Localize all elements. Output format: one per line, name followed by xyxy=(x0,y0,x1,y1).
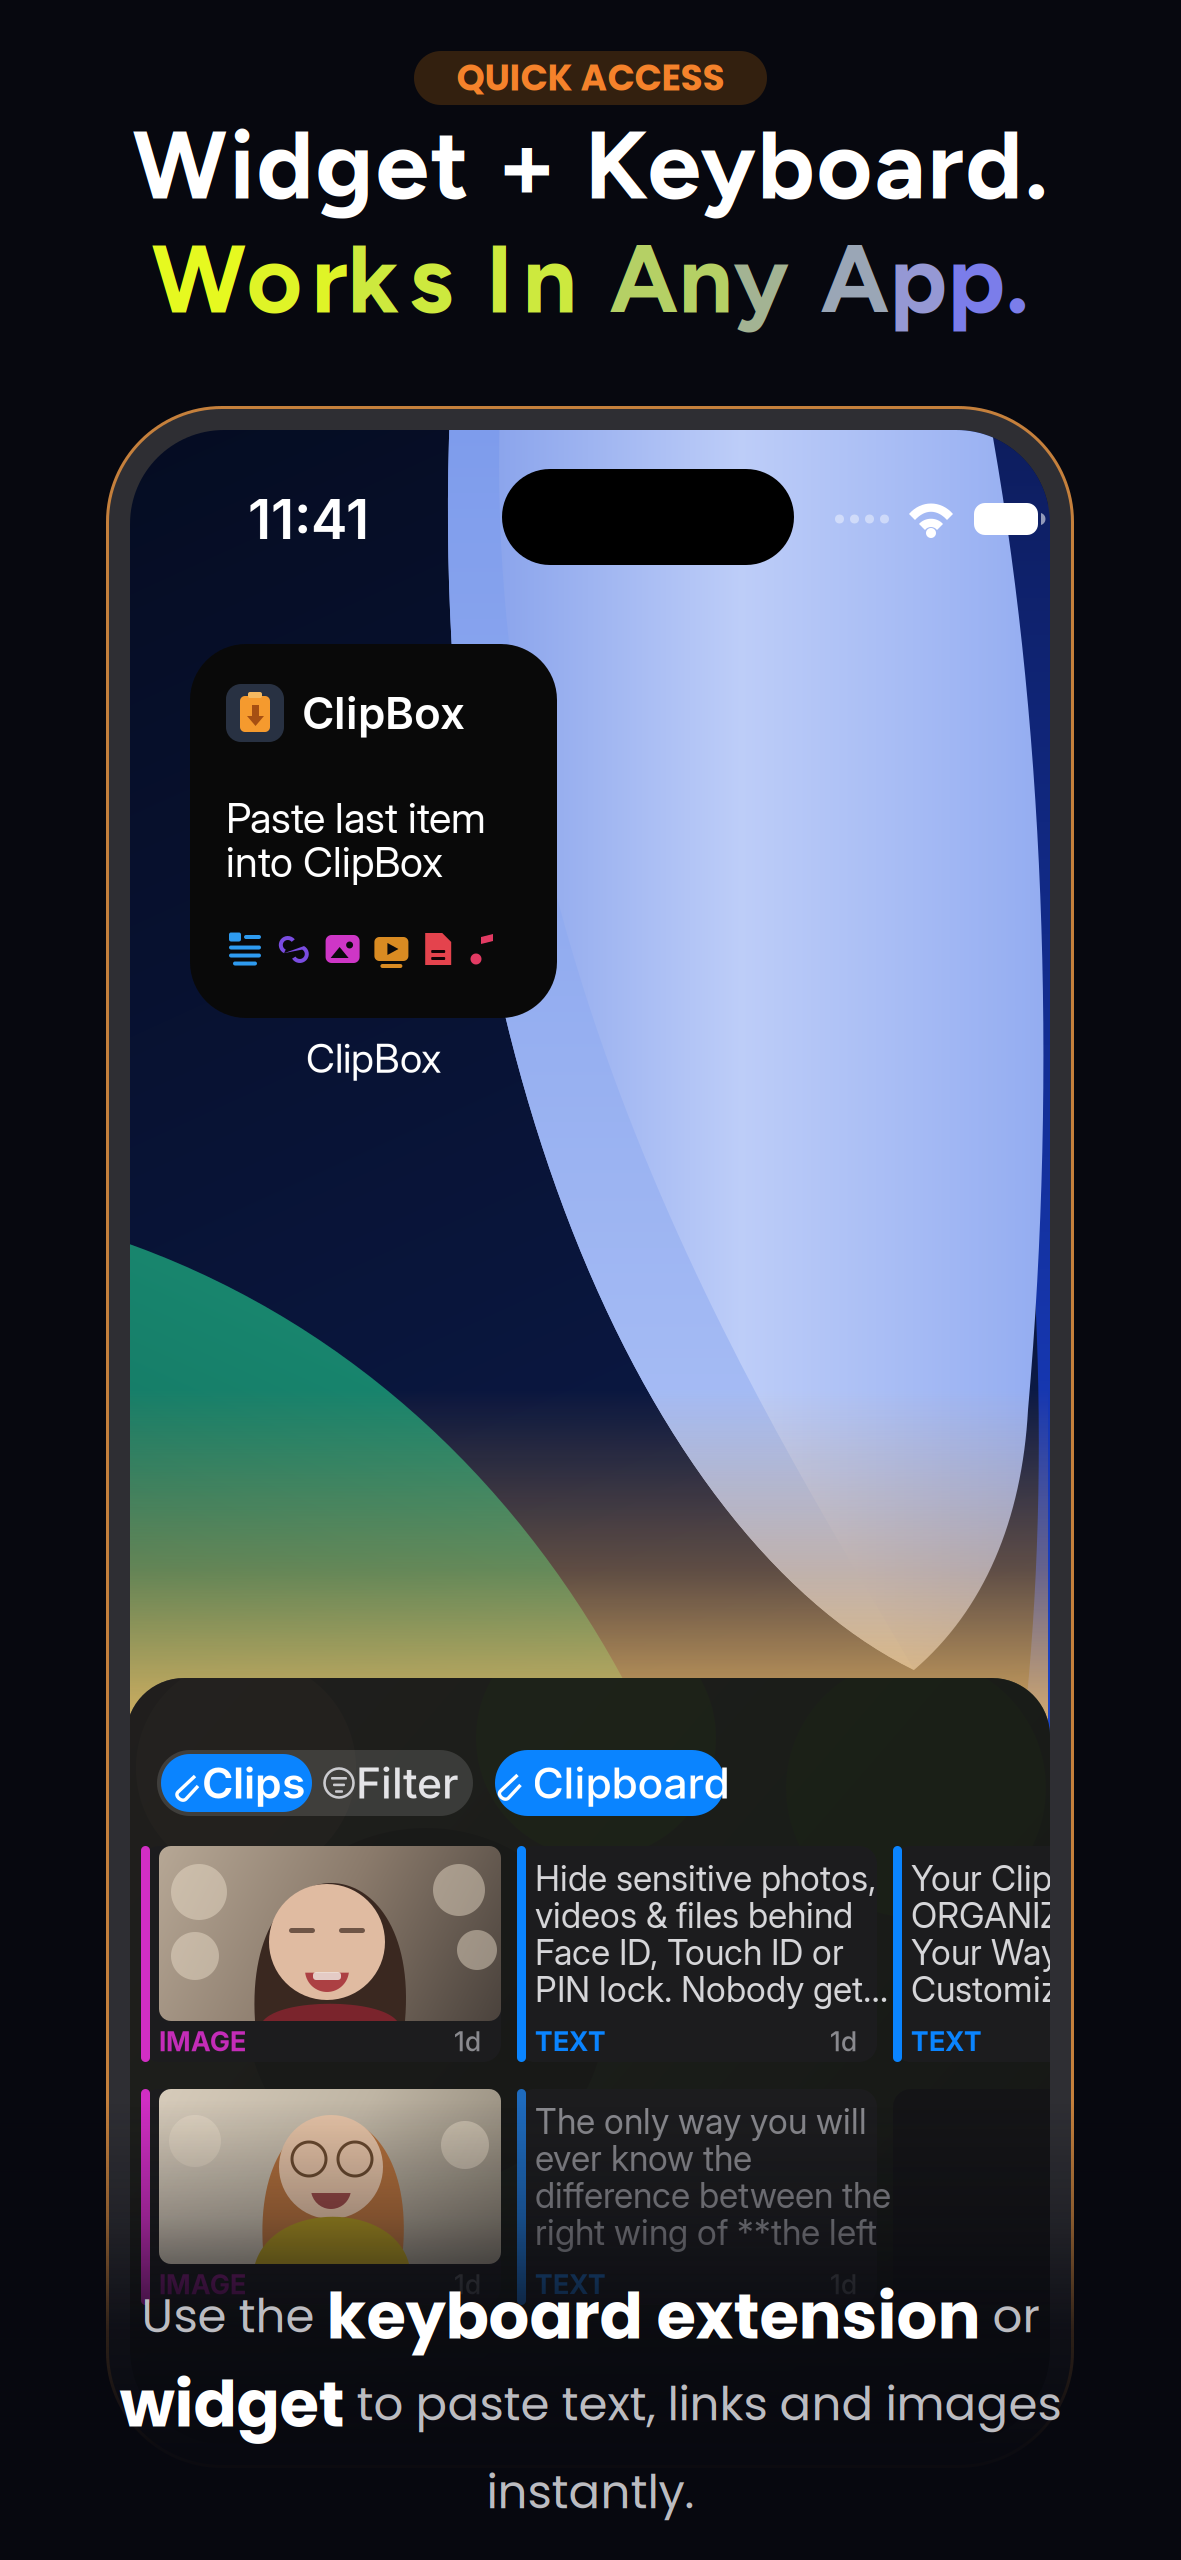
staticText: Paste last item xyxy=(226,793,486,843)
staticText: Use the xyxy=(141,2283,326,2349)
staticText: Clips xyxy=(202,1757,305,1809)
staticText: right wing of **the left xyxy=(535,2211,877,2253)
staticText: keyboard extension xyxy=(326,2271,980,2361)
staticText: . xyxy=(1005,221,1029,337)
staticText: videos & files behind xyxy=(535,1894,853,1936)
staticText: to paste text, links and images xyxy=(344,2371,1061,2437)
staticText: PIN lock. Nobody get… xyxy=(535,1968,888,2010)
staticText: Filter xyxy=(356,1757,459,1809)
staticText: 1d xyxy=(830,2025,857,2058)
staticText: 1d xyxy=(454,2025,481,2058)
button[interactable]: IMAGE xyxy=(141,1846,501,2062)
staticText: or xyxy=(246,221,347,337)
staticText: Customiz xyxy=(911,1968,1058,2010)
staticText: widget xyxy=(119,2359,344,2449)
button[interactable] xyxy=(893,2089,1181,2305)
staticText: instantly. xyxy=(486,2459,694,2525)
staticText: ClipBox xyxy=(306,1034,441,1082)
staticText: TEXT xyxy=(535,2268,606,2301)
staticText: 1d xyxy=(454,2268,481,2301)
button[interactable]: The only way you will xyxy=(517,2089,877,2305)
staticText: p xyxy=(947,221,1005,337)
button[interactable]: Clipboard xyxy=(495,1750,725,1816)
staticText: into ClipBox xyxy=(226,837,443,887)
staticText: 1d xyxy=(830,2268,857,2301)
staticText: or xyxy=(980,2283,1039,2349)
staticText: A xyxy=(788,221,889,337)
staticText: A xyxy=(577,221,678,337)
button[interactable]: Clips xyxy=(161,1754,312,1812)
staticText: W xyxy=(151,221,246,337)
staticText: TEXT xyxy=(535,2025,606,2058)
staticText: Clipboard xyxy=(532,1757,729,1809)
staticText: ClipBox xyxy=(302,686,465,740)
staticText: Face ID, Touch ID or xyxy=(535,1931,844,1973)
button[interactable]: Your Clip xyxy=(893,1846,1181,2062)
staticText: IMAGE xyxy=(159,2025,246,2058)
staticText: y xyxy=(733,221,788,337)
staticText: difference between the xyxy=(535,2174,891,2216)
button[interactable]: Filter xyxy=(314,1754,469,1812)
staticText: ORGANIZ xyxy=(911,1894,1061,1936)
staticText: 11:41 xyxy=(248,486,369,552)
staticText: In xyxy=(453,221,577,337)
staticText: QUICK ACCESS xyxy=(456,53,724,103)
staticText: Widget + Keyboard. xyxy=(132,107,1048,223)
staticText: p xyxy=(889,221,947,337)
button[interactable]: Hide sensitive photos, xyxy=(517,1846,877,2062)
staticText: IMAGE xyxy=(159,2268,246,2301)
staticText: n xyxy=(678,221,733,337)
button[interactable]: IMAGE xyxy=(141,2089,501,2305)
staticText: The only way you will xyxy=(535,2100,867,2142)
staticText: TEXT xyxy=(911,2025,982,2058)
button[interactable]: QUICK ACCESS xyxy=(414,51,767,105)
staticText: Your Way xyxy=(911,1931,1059,1973)
staticText: Your Clip xyxy=(911,1857,1052,1899)
staticText: ever know the xyxy=(535,2137,752,2179)
staticText: ks xyxy=(347,221,453,337)
staticText: Hide sensitive photos, xyxy=(535,1857,876,1899)
